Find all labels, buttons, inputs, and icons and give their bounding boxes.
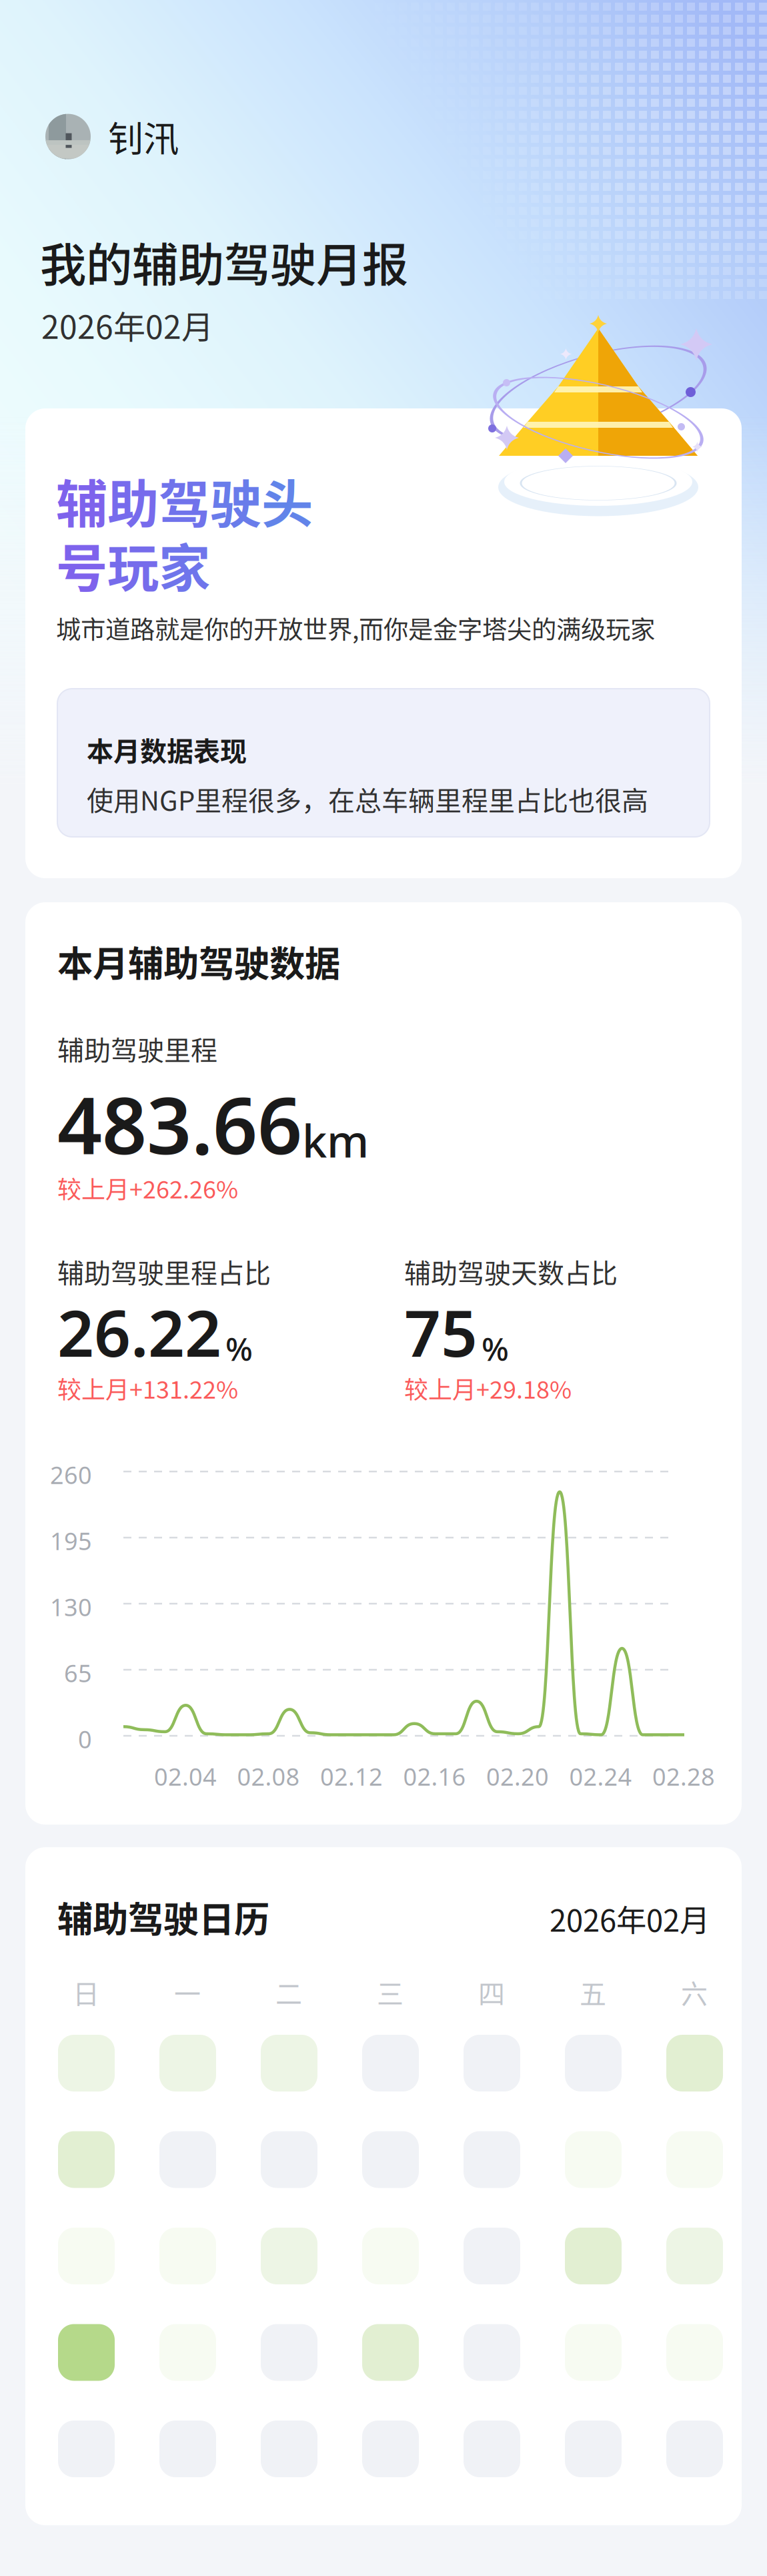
staticText: 本月数据表现 [87,730,247,769]
staticText: 26.22 [57,1289,221,1374]
staticText: % [482,1327,509,1370]
staticText: 家 [159,527,210,602]
staticText: 02.04 [154,1760,217,1792]
staticText: 辅助驾驶日历 [57,1891,269,1943]
staticText: 483.66 [57,1072,302,1176]
staticText: 02.28 [652,1760,715,1792]
staticText: 0 [78,1723,92,1755]
staticText: 2026年02月 [41,302,213,348]
staticText: 02.20 [486,1760,549,1792]
staticText: 六 [681,1973,708,2011]
staticText: km [302,1111,369,1170]
staticText: 260 [50,1459,92,1491]
staticText: 玩 [107,527,159,602]
staticText: 驶 [210,463,261,538]
staticText: 2026年02月 [550,1897,710,1940]
staticText: 02.24 [569,1760,632,1792]
staticText: 使用NGP里程很多，在总车辆里程里占比也很高 [87,779,648,818]
staticText: 驾 [159,463,210,538]
staticText: 较上月+262.26% [57,1171,238,1205]
staticText: 城市道路就是你的开放世界,而你是金字塔尖的满级玩家 [56,610,655,646]
staticText: 助 [107,463,159,538]
staticText: 195 [50,1525,92,1557]
staticText: 四 [478,1973,505,2011]
staticText: 我的辅助驾驶月报 [40,228,408,295]
staticText: 本月辅助驾驶数据 [57,936,340,987]
staticText: 02.12 [320,1760,383,1792]
staticText: 辅 [56,463,107,538]
staticText: 02.16 [403,1760,466,1792]
staticText: 辅助驾驶里程占比 [57,1252,271,1291]
staticText: % [225,1327,253,1370]
staticText: 三 [377,1973,404,2011]
button[interactable]: 钊汛 [45,111,179,162]
staticText: 130 [50,1591,92,1623]
staticText: 65 [64,1657,92,1689]
staticText: 辅助驾驶天数占比 [404,1252,618,1291]
staticText: 五 [580,1973,606,2011]
staticText: 75 [404,1289,478,1374]
staticText: 日 [73,1973,99,2011]
staticText: 头 [261,463,313,538]
staticText: 较上月+131.22% [57,1371,238,1406]
staticText: 号 [56,527,107,602]
staticText: 辅助驾驶里程 [57,1029,217,1068]
staticText: 钊汛 [108,111,179,162]
staticText: 二 [275,1973,302,2011]
staticText: 一 [174,1973,201,2011]
staticText: 02.08 [237,1760,300,1792]
staticText: 较上月+29.18% [404,1371,572,1406]
